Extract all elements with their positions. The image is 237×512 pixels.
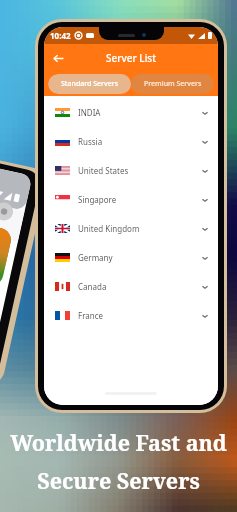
staticText: 10:42 [50,30,71,41]
staticText: Secure Servers [37,466,200,495]
button[interactable]: Standard Servers [48,74,131,94]
button[interactable]: Premium Servers [131,74,214,94]
staticText: Singapore [78,194,117,205]
button[interactable]: Back [48,48,68,68]
staticText: Canada [78,281,107,292]
button[interactable]: Germany [47,246,215,269]
staticText: Germany [78,252,113,263]
staticText: France [78,310,104,321]
staticText: Server List [106,51,157,65]
button[interactable]: France [47,304,215,327]
staticText: Russia [78,136,103,147]
button[interactable]: Singapore [47,188,215,211]
staticText: Standard Servers [61,79,119,89]
button[interactable]: United States [47,159,215,182]
button[interactable]: Russia [47,130,215,153]
staticText: Premium Servers [144,79,202,89]
staticText: Worldwide Fast and [10,428,227,457]
staticText: United States [78,165,129,176]
button[interactable]: Canada [47,275,215,298]
button[interactable]: INDIA [47,101,215,124]
button[interactable]: United Kingdom [47,217,215,240]
staticText: INDIA [78,107,101,118]
staticText: United Kingdom [78,223,140,234]
